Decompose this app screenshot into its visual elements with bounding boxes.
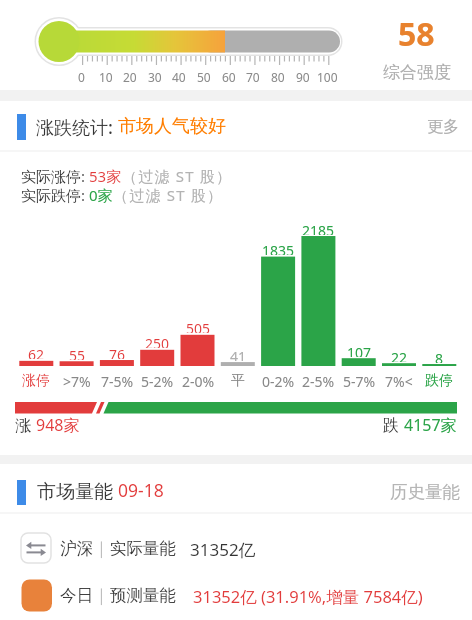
button[interactable] [0, 524, 472, 566]
staticText: 62 [28, 345, 45, 359]
staticText: 09-18 [118, 478, 164, 502]
staticText: 31352亿 (31.91%,增量 7584亿) [193, 585, 423, 608]
staticText: 2-5% [302, 372, 335, 388]
staticText: 市场量能 [37, 478, 118, 503]
staticText: 505 [186, 319, 211, 333]
staticText: 沪深 [60, 538, 93, 559]
staticText: 40 [172, 69, 186, 83]
staticText: 市场人气较好 [118, 115, 226, 138]
staticText: 实际量能 [110, 538, 176, 559]
staticText: 58 [398, 12, 435, 50]
staticText: 20 [123, 69, 137, 83]
staticText: 80 [271, 69, 285, 83]
staticText: 55 [69, 346, 86, 360]
staticText: 涨 [15, 414, 36, 433]
staticText: 53家 [89, 166, 122, 186]
staticText: 跌 [383, 414, 404, 433]
staticText: 10 [99, 69, 113, 83]
button[interactable]: 涨跌统计: [36, 115, 226, 139]
staticText: （过滤 ST 股） [113, 185, 224, 205]
staticText: 实际涨停: [21, 166, 89, 186]
staticText: 7-5% [101, 372, 134, 388]
staticText: 948家 [36, 414, 80, 433]
staticText: 250 [145, 334, 170, 348]
button[interactable]: 更多 [400, 117, 459, 137]
button[interactable]: 历史量能 [384, 481, 460, 502]
staticText: 4157家 [404, 414, 457, 433]
staticText: 22 [391, 348, 408, 362]
staticText: 综合强度 [383, 62, 451, 83]
staticText: 5-2% [141, 372, 174, 388]
staticText: 100 [317, 69, 338, 83]
staticText: 今日 [60, 585, 93, 606]
staticText: 2-0% [182, 372, 215, 388]
staticText: 涨跌统计: [36, 115, 118, 139]
staticText: 5-7% [343, 372, 376, 388]
staticText: 7%< [385, 372, 413, 388]
staticText: 90 [296, 69, 310, 83]
staticText: ｜ [93, 538, 110, 559]
staticText: 2185 [302, 221, 335, 235]
staticText: 76 [109, 345, 126, 359]
staticText: 预测量能 [110, 585, 176, 606]
staticText: 涨停 [22, 372, 50, 388]
staticText: >7% [63, 372, 91, 388]
staticText: ｜ [93, 585, 110, 606]
staticText: 跌停 [425, 372, 453, 388]
staticText: （过滤 ST 股） [122, 166, 233, 186]
staticText: 60 [222, 69, 236, 83]
staticText: 实际跌停: [21, 185, 89, 205]
staticText: 8 [435, 349, 444, 363]
staticText: 107 [347, 343, 372, 357]
staticText: 0 [78, 69, 85, 83]
staticText: 更多 [427, 117, 459, 137]
staticText: 0-2% [262, 372, 295, 388]
button[interactable]: 市场量能 [37, 478, 164, 503]
staticText: 41 [230, 347, 247, 361]
staticText: 70 [246, 69, 260, 83]
staticText: 平 [231, 372, 245, 388]
staticText: 30 [148, 69, 162, 83]
staticText: 1835 [262, 241, 295, 255]
staticText: 历史量能 [390, 481, 460, 502]
button[interactable] [0, 570, 472, 616]
staticText: 0家 [89, 185, 113, 205]
staticText: 31352亿 [190, 538, 256, 561]
staticText: 50 [197, 69, 211, 83]
